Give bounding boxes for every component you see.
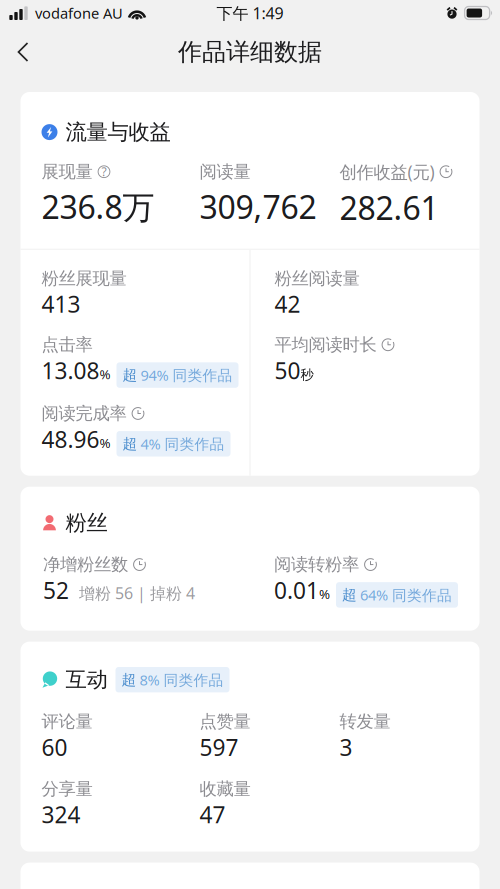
staticText: 309,762 xyxy=(199,185,316,228)
staticText: 0.01 xyxy=(274,575,319,605)
staticText: 阅读转粉率 xyxy=(274,554,359,575)
staticText: % xyxy=(99,434,110,452)
staticText: 60 xyxy=(41,732,67,762)
staticText: 47 xyxy=(199,799,225,830)
staticText: 粉丝 xyxy=(65,510,107,536)
staticText: 转发量 xyxy=(339,711,390,732)
staticText: 互动 xyxy=(65,667,107,693)
staticText: 超 xyxy=(342,586,357,604)
staticText: 创作收益(元) xyxy=(339,160,434,183)
button[interactable]: 返回 xyxy=(0,29,45,75)
staticText: 超 xyxy=(121,671,136,689)
staticText: 597 xyxy=(199,732,238,762)
staticText: 点赞量 xyxy=(199,711,250,732)
staticText: 阅读完成率 xyxy=(41,403,126,424)
staticText: % xyxy=(99,365,110,383)
staticText: 平均阅读时长 xyxy=(274,334,376,355)
staticText: ? xyxy=(101,164,106,180)
staticText: 粉丝展现量 xyxy=(41,268,126,289)
staticText: 282.61 xyxy=(339,186,438,229)
staticText: 8% 同类作品 xyxy=(139,670,223,689)
staticText: 展现量 xyxy=(41,161,92,182)
staticText: vodafone AU xyxy=(35,3,123,23)
staticText: 秒 xyxy=(300,367,313,383)
staticText: 超 xyxy=(122,435,137,453)
staticText: 413 xyxy=(41,289,80,319)
staticText: 作品详细数据 xyxy=(178,37,322,67)
staticText: 阅读量 xyxy=(199,161,250,182)
staticText: 评论量 xyxy=(41,711,92,732)
staticText: 236.8万 xyxy=(41,185,154,228)
staticText: 收藏量 xyxy=(199,778,250,799)
staticText: 3 xyxy=(339,732,352,762)
staticText: 下午 1:49 xyxy=(216,2,283,24)
staticText: 流量与收益 xyxy=(65,119,170,145)
staticText: 64% 同类作品 xyxy=(360,585,452,605)
staticText: 52 xyxy=(43,575,69,605)
staticText: 粉丝阅读量 xyxy=(274,268,359,289)
staticText: % xyxy=(319,585,330,603)
staticText: 48.96 xyxy=(41,424,99,454)
staticText: 13.08 xyxy=(41,355,99,385)
staticText: 324 xyxy=(41,799,80,830)
staticText: 点击率 xyxy=(41,334,92,355)
staticText: 增粉 56 | 掉粉 4 xyxy=(69,582,195,604)
staticText: 超 xyxy=(122,366,137,384)
staticText: 分享量 xyxy=(41,778,92,799)
staticText: 94% 同类作品 xyxy=(140,365,232,385)
staticText: 4% 同类作品 xyxy=(140,434,224,454)
staticText: 净增粉丝数 xyxy=(43,554,128,575)
staticText: 42 xyxy=(274,289,300,319)
staticText: 50 xyxy=(274,355,300,385)
